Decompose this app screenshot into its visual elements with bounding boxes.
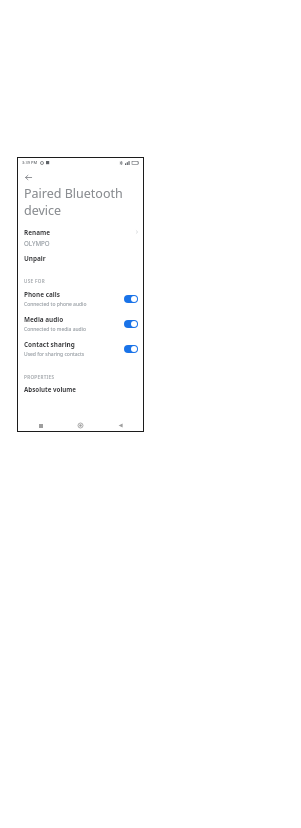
button[interactable]: Toggle on bbox=[124, 345, 138, 353]
staticText: Paired Bluetooth bbox=[24, 185, 123, 202]
button[interactable]: Toggle on bbox=[124, 295, 138, 303]
button[interactable]: Back bbox=[115, 420, 126, 431]
staticText: Connected to media audio bbox=[24, 326, 86, 333]
staticText: device bbox=[24, 202, 62, 219]
staticText: Phone calls bbox=[24, 290, 60, 299]
staticText: Rename bbox=[24, 228, 51, 237]
staticText: Connected to phone audio bbox=[24, 301, 87, 308]
button[interactable]: Media audio bbox=[17, 314, 144, 339]
staticText: USE FOR bbox=[24, 278, 46, 284]
button[interactable]: Recent apps bbox=[35, 420, 46, 431]
button[interactable]: Back bbox=[22, 171, 34, 183]
staticText: OLYMPO bbox=[24, 239, 50, 247]
staticText: Media audio bbox=[24, 315, 64, 324]
staticText: Used for sharing contacts bbox=[24, 351, 85, 358]
button[interactable]: Home bbox=[75, 420, 86, 431]
staticText: 3:39 PM bbox=[22, 160, 38, 165]
staticText: Absolute volume bbox=[24, 385, 77, 393]
staticText: Contact sharing bbox=[24, 340, 75, 349]
button[interactable]: Phone calls bbox=[17, 289, 144, 314]
button[interactable]: Rename bbox=[17, 228, 144, 247]
button[interactable]: Unpair bbox=[17, 247, 144, 265]
button[interactable]: Absolute volume bbox=[17, 385, 144, 393]
staticText: Unpair bbox=[24, 254, 46, 263]
button[interactable]: Contact sharing bbox=[17, 339, 144, 364]
staticText: PROPERTIES bbox=[24, 374, 55, 380]
button[interactable]: Toggle on bbox=[124, 320, 138, 328]
